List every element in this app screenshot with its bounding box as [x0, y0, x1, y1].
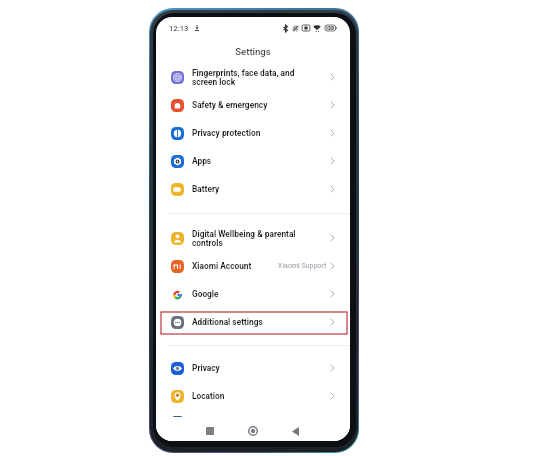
button[interactable]: Safety & emergency: [156, 91, 350, 119]
button[interactable]: Google: [156, 280, 350, 308]
button[interactable]: Fingerprints, face data, and screen lock: [156, 63, 350, 91]
button[interactable]: Recent apps: [202, 423, 218, 439]
staticText: Apps: [192, 156, 330, 166]
staticText: Fingerprints, face data, and screen lock: [192, 68, 330, 87]
staticText: Privacy: [192, 363, 330, 373]
staticText: Xiaomi Account: [192, 261, 278, 271]
button[interactable]: Apps: [156, 147, 350, 175]
staticText: Settings: [235, 46, 271, 57]
staticText: Digital Wellbeing & parental controls: [192, 229, 330, 248]
staticText: 12:13: [169, 24, 189, 33]
button[interactable]: Back: [287, 423, 303, 439]
button[interactable]: Digital Wellbeing & parental controls: [156, 224, 350, 252]
staticText: Safety & emergency: [192, 100, 330, 110]
staticText: Xiaomi Support: [278, 262, 327, 270]
button[interactable]: Home: [245, 423, 261, 439]
button[interactable]: Xiaomi Account: [156, 252, 350, 280]
staticText: Location: [192, 391, 330, 401]
button[interactable]: Privacy: [156, 354, 350, 382]
staticText: Battery: [192, 184, 330, 194]
staticText: Google: [192, 289, 330, 299]
button[interactable]: Privacy protection: [156, 119, 350, 147]
button[interactable]: Battery: [156, 175, 350, 203]
staticText: Privacy protection: [192, 128, 330, 138]
button[interactable]: Additional settings: [156, 308, 350, 336]
staticText: Additional settings: [192, 317, 330, 327]
button[interactable]: Location: [156, 382, 350, 410]
